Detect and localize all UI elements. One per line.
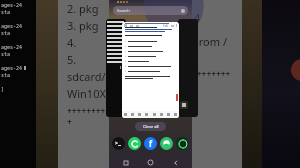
button[interactable]: Phone: [128, 137, 141, 150]
button[interactable]: Search: [113, 6, 188, 15]
staticText: 6.: [125, 65, 127, 68]
button[interactable]: [106, 19, 126, 117]
staticText: 7.: [125, 70, 127, 73]
staticText: Search: [117, 8, 130, 13]
button[interactable]: Close all: [135, 122, 166, 131]
staticText: 2. pkg insta: [67, 1, 109, 16]
staticText: 4: [194, 10, 201, 25]
button[interactable]: Edit: [122, 22, 179, 118]
staticText: 3.: [125, 50, 127, 53]
button[interactable]: Messaging: [160, 137, 173, 150]
staticText: ages-24 sta: [1, 2, 36, 16]
staticText: 3. pkg insta: [67, 18, 109, 33]
staticText: +++++++++: [67, 105, 109, 127]
staticText: 4. termux-s: [67, 35, 109, 50]
staticText: 5. qemu-sy: [67, 52, 109, 67]
staticText: 2.: [125, 45, 127, 48]
staticText: drom /: [192, 34, 227, 49]
button[interactable]: Recents: [121, 158, 130, 167]
staticText: ]: [1, 86, 5, 93]
staticText: 4.: [125, 55, 127, 58]
button[interactable]: Termux: [112, 137, 125, 150]
staticText: sdcard/im: [67, 69, 109, 84]
staticText: 5.: [125, 60, 127, 63]
staticText: ages-24 sta: [1, 65, 36, 79]
staticText: ++++++++: [192, 68, 231, 79]
staticText: Edit: [163, 24, 169, 28]
staticText: ages-24 sta: [1, 44, 36, 58]
staticText: >_: [115, 140, 122, 147]
staticText: f: [149, 138, 153, 149]
staticText: 1.: [125, 40, 127, 43]
button[interactable]: Home: [146, 158, 155, 167]
staticText: Win10XPE: [67, 86, 109, 101]
button[interactable]: Back: [171, 158, 180, 167]
staticText: ages-24 sta: [1, 23, 36, 37]
button[interactable]: WhatsApp: [176, 137, 189, 150]
button[interactable]: Facebook: [144, 137, 157, 150]
button[interactable]: [178, 19, 198, 117]
staticText: Close all: [143, 124, 159, 129]
